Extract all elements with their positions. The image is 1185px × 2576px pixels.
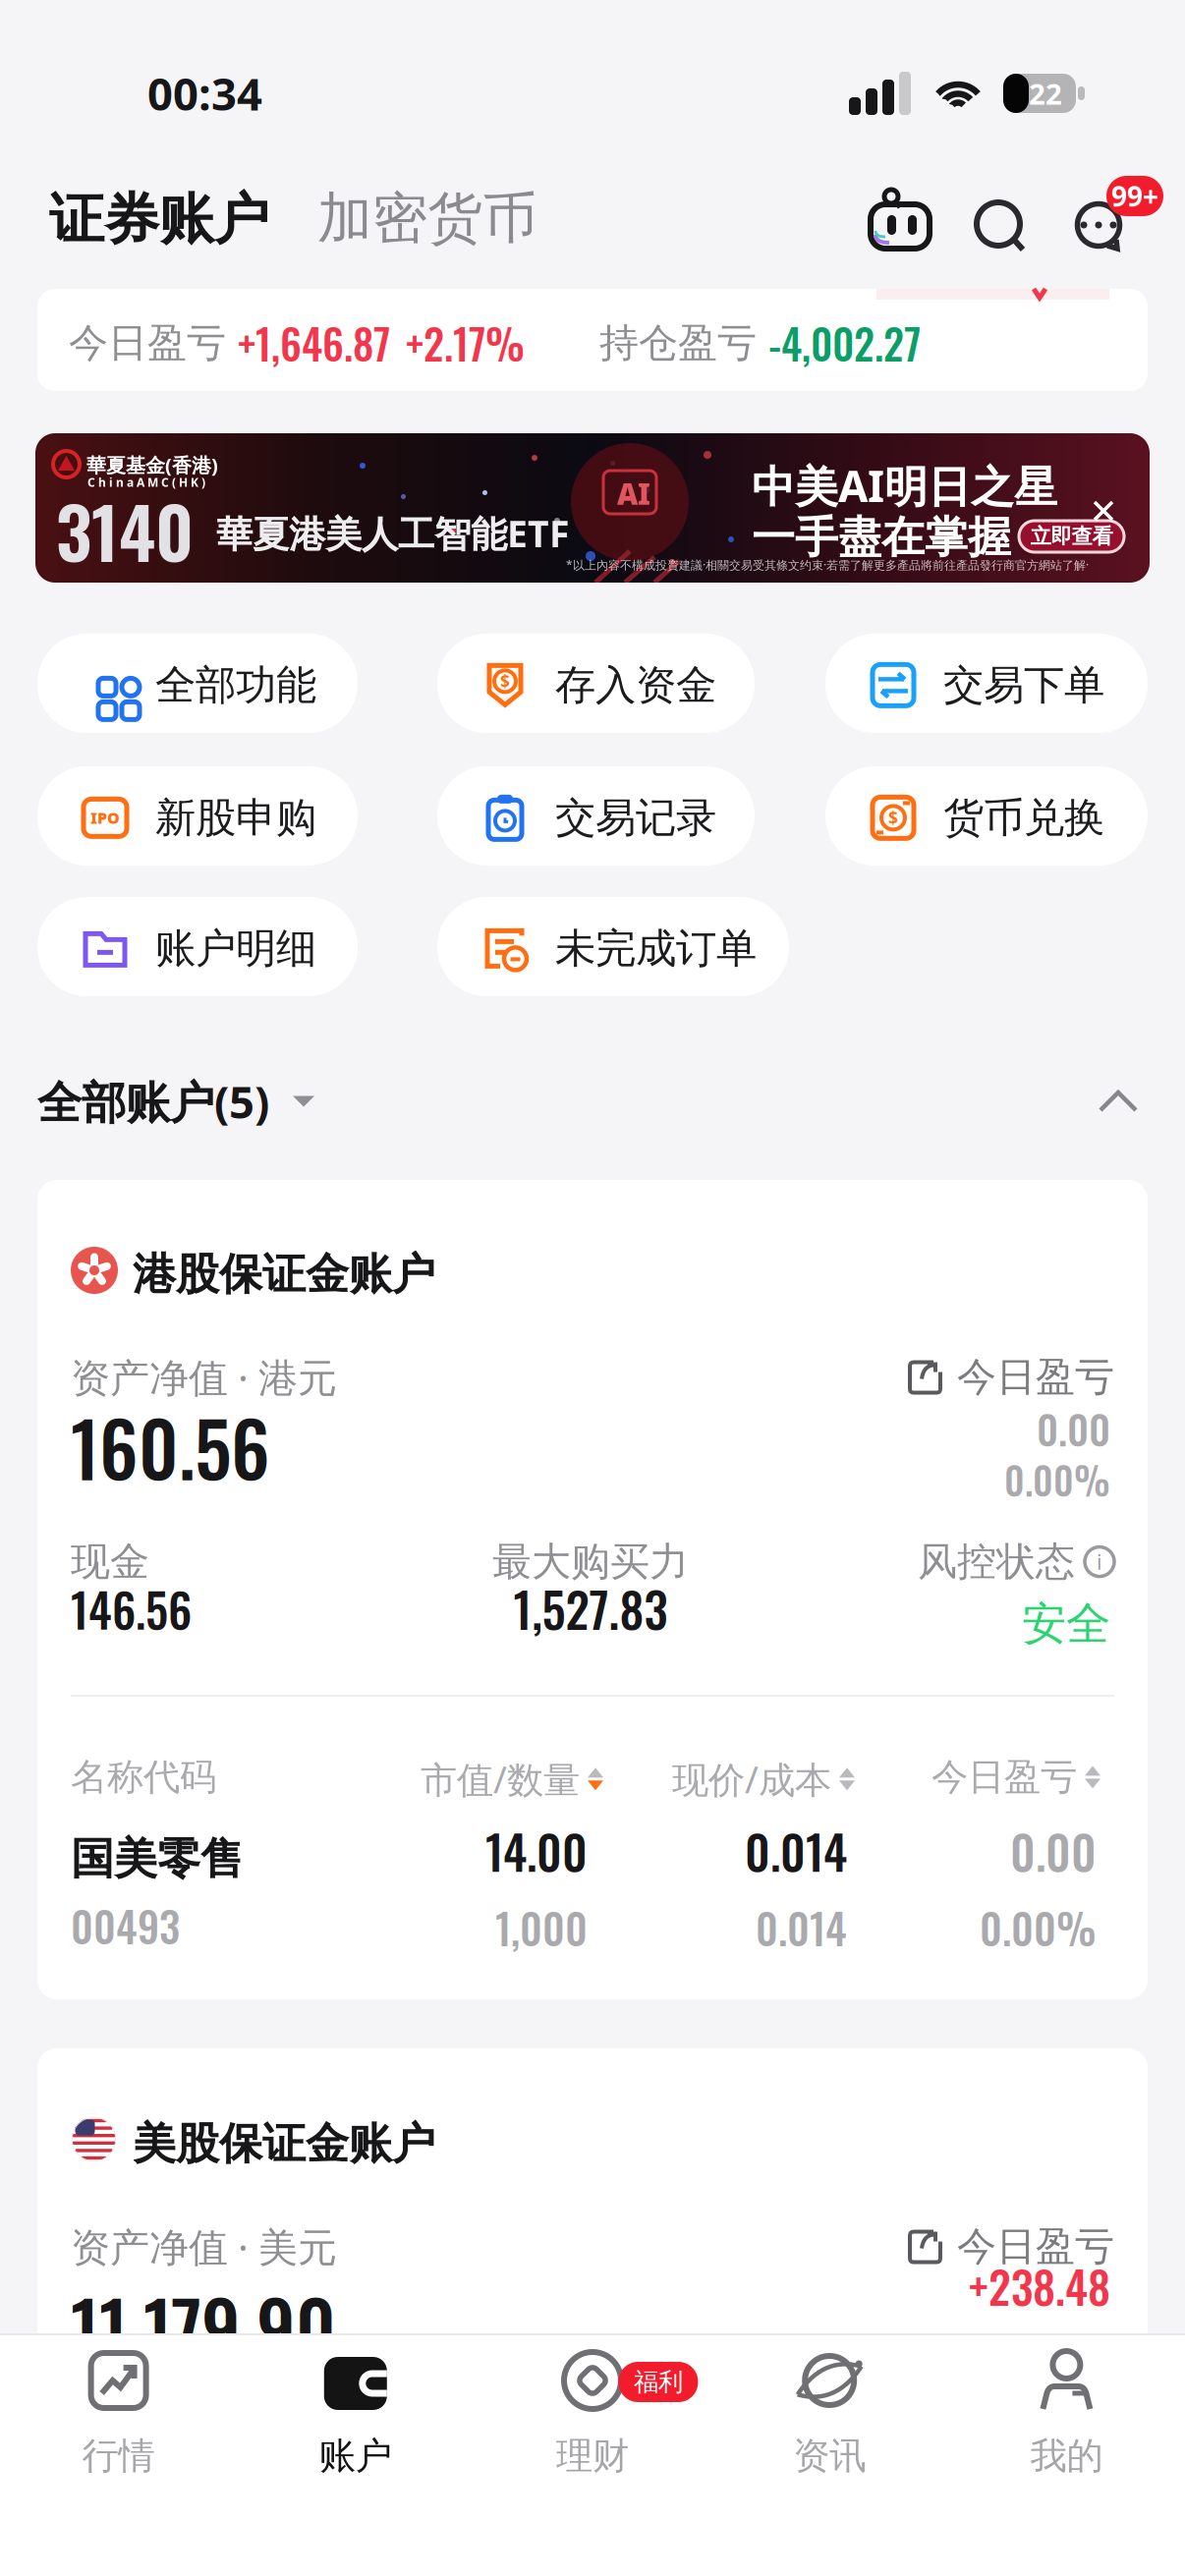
button[interactable]: AI	[0, 433, 1185, 583]
staticText: *以上內容不構成投資建議·相關交易受其條文约束·若需了解更多產品將前往產品發行商…	[566, 557, 1089, 573]
staticText: IPO	[90, 807, 120, 828]
staticText: i	[1097, 1548, 1102, 1576]
staticText: -4,002.27	[768, 312, 921, 374]
button[interactable]: 搜索	[974, 199, 1025, 252]
staticText: 美股保证金账户	[133, 2117, 435, 2170]
staticText: AI	[617, 475, 650, 513]
staticText: 今日盈亏	[957, 2222, 1114, 2271]
staticText: 160.56	[71, 1391, 270, 1502]
staticText: 账户	[319, 2434, 392, 2479]
button[interactable]: 账户	[237, 2351, 474, 2479]
staticText: $	[500, 670, 510, 693]
staticText: 最大购买力	[492, 1538, 689, 1586]
staticText: 资讯	[793, 2434, 866, 2479]
staticText: 资产净值 · 港元	[71, 1351, 337, 1403]
button[interactable]: AI 助手	[871, 190, 931, 249]
button[interactable]: 行情	[0, 2351, 237, 2479]
button[interactable]: 交易下单	[825, 634, 1148, 733]
button[interactable]: 账户明细	[37, 897, 358, 996]
staticText: 安全	[1022, 1596, 1110, 1651]
staticText: 14.00	[485, 1816, 588, 1885]
staticText: 華夏港美人工智能ETF	[216, 509, 569, 558]
staticText: 国美零售	[71, 1832, 244, 1885]
staticText: 0.00	[1037, 1398, 1110, 1458]
staticText: 风控状态	[918, 1538, 1075, 1586]
button[interactable]: 证券账户	[49, 186, 269, 253]
staticText: +2.17%	[406, 312, 525, 374]
staticText: 账户明细	[155, 924, 316, 973]
staticText: 0.00%	[1004, 1451, 1110, 1507]
staticText: 華夏基金(香港)	[86, 452, 218, 478]
staticText: 证券账户	[49, 186, 269, 253]
button[interactable]: 交易记录	[437, 766, 755, 866]
staticText: 11,179.90	[71, 2270, 336, 2381]
staticText: 3140	[56, 477, 194, 582]
staticText: 全部账户(5)	[37, 1072, 269, 1131]
staticText: 0.014	[756, 1896, 847, 1958]
staticText: 今日盈亏	[931, 1755, 1077, 1800]
staticText: 交易下单	[943, 660, 1104, 710]
button[interactable]: 未完成订单	[437, 897, 789, 996]
staticText: 0.00	[1010, 1816, 1097, 1885]
button[interactable]: IPO	[37, 766, 358, 866]
staticText: 全部功能	[155, 660, 316, 710]
staticText: 0.00%	[980, 1896, 1097, 1958]
staticText: C h i n a A M C ( H K )	[87, 475, 205, 490]
staticText: $	[888, 806, 898, 829]
staticText: 00493	[71, 1894, 180, 1956]
button[interactable]: 我的	[948, 2351, 1185, 2479]
staticText: 现价/成本	[672, 1755, 831, 1803]
staticText: 港股保证金账户	[133, 1248, 435, 1301]
staticText: +238.48	[969, 2253, 1110, 2319]
staticText: 我的	[1030, 2434, 1103, 2479]
staticText: 0.014	[745, 1816, 847, 1885]
staticText: 行情	[82, 2434, 155, 2479]
staticText: 今日盈亏	[69, 319, 226, 367]
staticText: 福利	[634, 2367, 683, 2397]
button[interactable]: 港股保证金账户	[0, 1180, 1185, 1999]
button[interactable]: $	[825, 766, 1148, 866]
staticText: 交易记录	[555, 793, 716, 843]
staticText: 货币兑换	[943, 793, 1104, 843]
staticText: 现金	[71, 1538, 149, 1586]
staticText: 1,527.83	[513, 1573, 668, 1644]
button[interactable]: 全部账户(5)	[37, 1072, 316, 1131]
staticText: +1,646.87	[238, 312, 390, 374]
staticText: 99+	[1111, 178, 1158, 214]
button[interactable]: 消息	[1072, 198, 1127, 252]
button[interactable]: 收起	[1099, 1091, 1138, 1112]
button[interactable]: 全部功能	[37, 634, 358, 733]
staticText: 中美AI明日之星	[752, 457, 1057, 514]
staticText: 00:34	[147, 64, 262, 123]
staticText: 理财	[556, 2434, 629, 2479]
staticText: 市值/数量	[421, 1755, 580, 1803]
button[interactable]: 理财	[474, 2351, 711, 2479]
staticText: 今日盈亏	[957, 1353, 1114, 1401]
staticText: 未完成订单	[555, 924, 757, 973]
staticText: 加密货币	[317, 185, 537, 252]
staticText: 22	[1029, 74, 1062, 112]
button[interactable]: 资讯	[711, 2351, 948, 2479]
staticText: 146.56	[71, 1575, 192, 1643]
button[interactable]: 加密货币	[317, 185, 537, 252]
staticText: 一手盡在掌握	[752, 511, 1011, 564]
staticText: 资产净值 · 美元	[71, 2220, 337, 2273]
button[interactable]: 关闭广告	[1094, 501, 1113, 521]
staticText: 名称代码	[71, 1755, 216, 1800]
staticText: 1,000	[495, 1896, 588, 1958]
staticText: 持仓盈亏	[599, 319, 757, 367]
staticText: 立即查看	[1030, 524, 1113, 549]
button[interactable]: 美股保证金账户	[0, 2048, 1185, 2402]
staticText: 新股申购	[155, 793, 316, 843]
button[interactable]: $	[437, 634, 755, 733]
staticText: 存入资金	[555, 660, 716, 710]
